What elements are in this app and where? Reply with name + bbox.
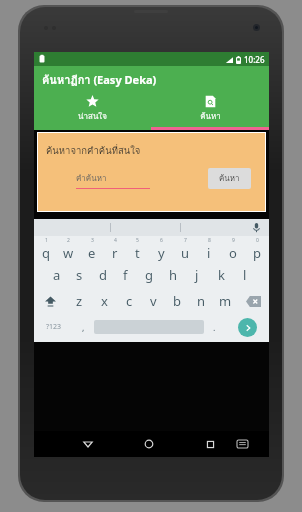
staticText: คำค้นหา xyxy=(76,172,107,185)
button[interactable]: Favourites xyxy=(34,92,151,130)
staticText: 2 xyxy=(67,237,70,244)
staticText: a xyxy=(53,266,61,284)
staticText: ค้นหา xyxy=(219,172,240,185)
button[interactable]: z xyxy=(67,288,92,314)
staticText: น่าสนใจ xyxy=(78,110,107,123)
staticText: 4 xyxy=(114,237,117,244)
button[interactable]: d xyxy=(91,262,114,288)
staticText: q xyxy=(42,244,50,262)
button[interactable]: Shift xyxy=(34,288,67,314)
staticText: 8 xyxy=(208,237,211,244)
button[interactable]: Hide keyboard xyxy=(226,431,258,457)
staticText: i xyxy=(207,244,211,262)
button[interactable]: j xyxy=(185,262,209,288)
button[interactable]: g xyxy=(137,262,161,288)
staticText: b xyxy=(173,292,181,310)
button[interactable]: Recents xyxy=(194,431,226,457)
staticText: u xyxy=(181,244,190,262)
button[interactable]: n xyxy=(189,288,213,314)
staticText: 7 xyxy=(184,237,187,244)
staticText: v xyxy=(150,292,157,310)
other: Favourites xyxy=(86,95,99,108)
staticText: 5 xyxy=(136,237,139,244)
button[interactable]: Voice input xyxy=(250,221,263,234)
staticText: j xyxy=(195,266,199,284)
button[interactable]: c xyxy=(117,288,141,314)
button[interactable]: k xyxy=(209,262,233,288)
button[interactable]: 4 xyxy=(103,236,126,262)
staticText: ?123 xyxy=(46,322,62,332)
button[interactable]: 8 xyxy=(197,236,221,262)
button[interactable]: Search xyxy=(151,92,269,130)
staticText: y xyxy=(158,244,165,262)
staticText: ค้นหาจากคำค้นที่สนใจ xyxy=(46,143,141,158)
button[interactable]: 0 xyxy=(245,236,269,262)
button[interactable]: 1 xyxy=(34,236,57,262)
staticText: l xyxy=(243,266,247,284)
button[interactable]: ?123 xyxy=(34,314,73,340)
staticText: z xyxy=(76,292,83,310)
staticText: x xyxy=(101,292,108,310)
button[interactable]: f xyxy=(114,262,137,288)
staticText: c xyxy=(126,292,133,310)
staticText: f xyxy=(123,266,128,284)
staticText: ค้นหา xyxy=(200,110,221,123)
staticText: 0 xyxy=(256,237,259,244)
button[interactable]: v xyxy=(141,288,165,314)
staticText: p xyxy=(253,244,261,262)
staticText: r xyxy=(112,244,118,262)
button[interactable]: 6 xyxy=(149,236,173,262)
staticText: ค้นหาฎีกา (Easy Deka) xyxy=(42,71,157,88)
button[interactable]: 9 xyxy=(221,236,245,262)
button[interactable]: , xyxy=(73,314,94,340)
staticText: 9 xyxy=(232,237,235,244)
button[interactable]: l xyxy=(233,262,257,288)
staticText: w xyxy=(63,244,74,262)
staticText: , xyxy=(82,321,85,333)
button[interactable]: Home xyxy=(133,431,165,457)
staticText: n xyxy=(197,292,206,310)
button[interactable]: 2 xyxy=(57,236,80,262)
button[interactable]: b xyxy=(165,288,189,314)
staticText: 6 xyxy=(160,237,163,244)
button[interactable]: m xyxy=(213,288,237,314)
staticText: g xyxy=(145,266,153,284)
button[interactable]: s xyxy=(68,262,91,288)
button[interactable]: ค้นหา xyxy=(208,168,251,189)
staticText: 1 xyxy=(45,237,48,244)
button[interactable]: h xyxy=(161,262,185,288)
staticText: d xyxy=(99,266,107,284)
button[interactable]: Enter xyxy=(225,314,269,340)
staticText: e xyxy=(88,244,96,262)
staticText: 3 xyxy=(91,237,94,244)
button[interactable]: 3 xyxy=(80,236,103,262)
staticText: m xyxy=(219,292,232,310)
other: Search xyxy=(204,95,217,108)
staticText: . xyxy=(213,321,216,333)
button[interactable]: x xyxy=(92,288,117,314)
button[interactable]: Back xyxy=(71,431,104,457)
button[interactable]: 7 xyxy=(173,236,197,262)
button[interactable]: 5 xyxy=(126,236,149,262)
staticText: s xyxy=(76,266,83,284)
staticText: h xyxy=(169,266,178,284)
button[interactable]: a xyxy=(45,262,68,288)
button[interactable]: คำค้นหา xyxy=(76,172,150,189)
staticText: o xyxy=(229,244,237,262)
staticText: k xyxy=(218,266,225,284)
staticText: t xyxy=(135,244,140,262)
button[interactable]: . xyxy=(204,314,225,340)
staticText: 10:26 xyxy=(244,54,265,65)
button[interactable]: Backspace xyxy=(237,288,269,314)
